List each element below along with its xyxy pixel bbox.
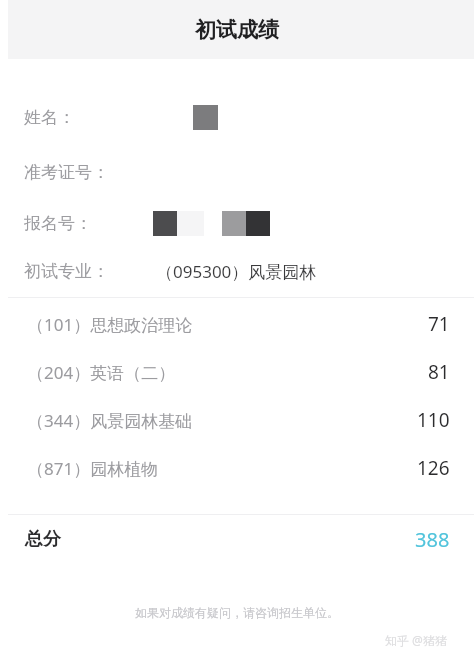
- staticText: （344）风景园林基础: [27, 409, 193, 432]
- staticText: （101）思想政治理论: [27, 313, 193, 336]
- staticText: 初试成绩: [195, 17, 279, 43]
- staticText: 初试专业：: [24, 261, 109, 282]
- staticText: （204）英语（二）: [27, 361, 176, 384]
- staticText: 知乎 @猪猪: [385, 632, 447, 648]
- staticText: 报名号：: [24, 213, 92, 234]
- staticText: 110: [417, 407, 450, 433]
- staticText: 总分: [25, 528, 61, 551]
- staticText: 如果对成绩有疑问，请咨询招生单位。: [135, 605, 339, 620]
- button[interactable]: （871）园林植物: [0, 444, 474, 492]
- staticText: （095300）风景园林: [156, 260, 317, 283]
- staticText: 388: [415, 526, 450, 553]
- staticText: （871）园林植物: [27, 457, 159, 480]
- staticText: 71: [428, 311, 450, 337]
- staticText: 准考证号：: [24, 162, 109, 183]
- staticText: 姓名：: [24, 107, 75, 128]
- staticText: 126: [417, 455, 450, 481]
- button[interactable]: （204）英语（二）: [0, 348, 474, 396]
- button[interactable]: （344）风景园林基础: [0, 396, 474, 444]
- button[interactable]: 总分: [0, 514, 474, 564]
- button[interactable]: （101）思想政治理论: [0, 300, 474, 348]
- staticText: 81: [428, 359, 450, 385]
